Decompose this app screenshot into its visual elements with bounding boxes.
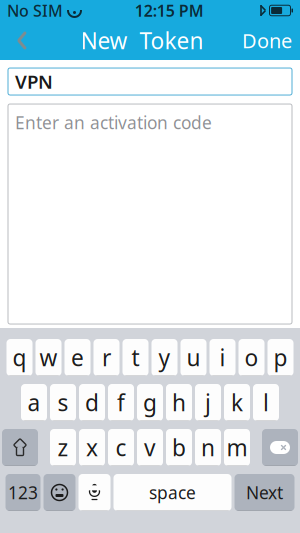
staticText: o <box>244 342 258 372</box>
staticText: b <box>172 432 186 462</box>
staticText: m <box>226 432 247 462</box>
button[interactable]: p <box>267 339 293 376</box>
button[interactable]: l <box>253 384 279 421</box>
staticText: f <box>117 387 125 417</box>
button[interactable]: Delete <box>262 429 298 466</box>
staticText: u <box>186 342 200 372</box>
staticText: Next <box>246 481 283 504</box>
button[interactable]: y <box>151 339 177 376</box>
staticText: i <box>219 342 225 372</box>
button[interactable]: Done <box>240 21 300 60</box>
staticText: d <box>85 387 99 417</box>
staticText: g <box>143 387 157 417</box>
button[interactable]: Emoji <box>43 474 75 511</box>
staticText: c <box>115 432 126 462</box>
staticText: w <box>39 342 57 372</box>
staticText: x <box>86 432 98 462</box>
button[interactable]: h <box>166 384 192 421</box>
button[interactable]: x <box>79 429 105 466</box>
button[interactable]: k <box>224 384 250 421</box>
staticText: p <box>273 342 287 372</box>
staticText: k <box>231 387 243 417</box>
button[interactable]: r <box>93 339 119 376</box>
staticText: r <box>102 342 111 372</box>
button[interactable]: f <box>108 384 134 421</box>
staticText: q <box>12 342 26 372</box>
button[interactable]: o <box>238 339 264 376</box>
button[interactable]: m <box>224 429 250 466</box>
button[interactable]: j <box>195 384 221 421</box>
staticText: No SIM <box>7 0 63 21</box>
staticText: h <box>172 387 186 417</box>
staticText: n <box>201 432 215 462</box>
staticText: y <box>158 342 170 372</box>
staticText: l <box>263 387 269 417</box>
staticText: z <box>57 432 68 462</box>
button[interactable]: s <box>50 384 76 421</box>
button[interactable]: c <box>108 429 134 466</box>
button[interactable]: u <box>180 339 206 376</box>
button[interactable]: Shift <box>2 429 38 466</box>
staticText: 12:15 PM <box>135 0 204 21</box>
button[interactable]: Next <box>234 474 294 511</box>
button[interactable]: v <box>137 429 163 466</box>
button[interactable]: t <box>122 339 148 376</box>
staticText: 123 <box>8 481 38 504</box>
button[interactable]: z <box>50 429 76 466</box>
button[interactable]: w <box>35 339 61 376</box>
button[interactable]: n <box>195 429 221 466</box>
button[interactable]: b <box>166 429 192 466</box>
button[interactable]: g <box>137 384 163 421</box>
button[interactable]: Back <box>0 21 44 60</box>
button[interactable]: d <box>79 384 105 421</box>
button[interactable]: e <box>64 339 90 376</box>
button[interactable]: space <box>113 474 231 511</box>
button[interactable]: 123 <box>5 474 40 511</box>
staticText: VPN <box>15 69 53 94</box>
staticText: s <box>57 387 68 417</box>
staticText: e <box>71 342 84 372</box>
button[interactable]: i <box>209 339 235 376</box>
staticText: Enter an activation code <box>15 111 212 134</box>
staticText: v <box>144 432 156 462</box>
staticText: t <box>131 342 139 372</box>
button[interactable]: q <box>6 339 32 376</box>
button[interactable]: Dictation <box>78 474 110 511</box>
staticText: a <box>27 387 40 417</box>
staticText: space <box>149 481 196 504</box>
staticText: Done <box>242 27 292 54</box>
button[interactable]: a <box>21 384 47 421</box>
staticText: j <box>205 387 211 417</box>
staticText: New Token <box>80 25 203 55</box>
